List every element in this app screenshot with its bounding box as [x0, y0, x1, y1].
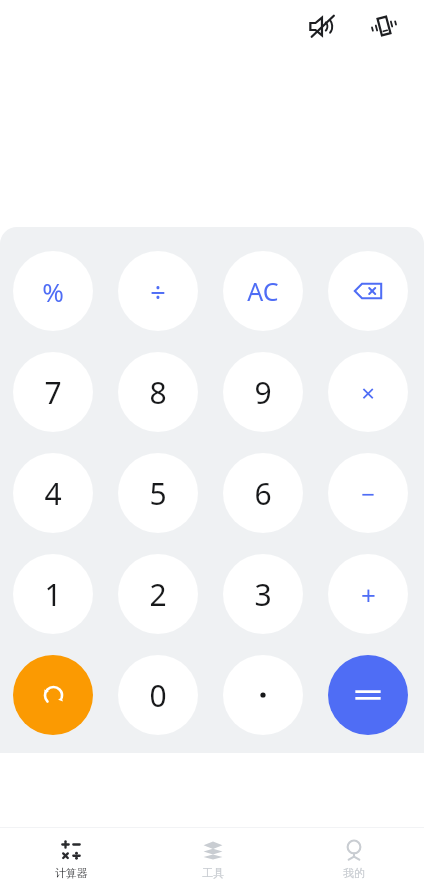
staticText: +	[361, 577, 376, 612]
button[interactable]: ÷	[118, 251, 198, 331]
button[interactable]: Convert	[13, 655, 93, 735]
button[interactable]: ×	[328, 352, 408, 432]
staticText: 我的	[343, 866, 365, 880]
button[interactable]: 0	[118, 655, 198, 735]
button[interactable]: Backspace	[328, 251, 408, 331]
button[interactable]: 工具	[142, 828, 283, 890]
button[interactable]: 2	[118, 554, 198, 634]
button[interactable]: Vibrate	[362, 4, 406, 48]
button[interactable]: 1	[13, 554, 93, 634]
staticText: −	[361, 477, 375, 510]
button[interactable]: 7	[13, 352, 93, 432]
button[interactable]: %	[13, 251, 93, 331]
staticText: 6	[254, 473, 272, 514]
button[interactable]: 6	[223, 453, 303, 533]
staticText: 4	[44, 473, 62, 514]
staticText: 7	[44, 372, 62, 413]
staticText: 5	[149, 473, 167, 514]
staticText: 2	[149, 574, 167, 615]
staticText: 工具	[202, 866, 224, 880]
staticText: 1	[44, 574, 62, 615]
staticText: 9	[254, 372, 272, 413]
staticText: ÷	[150, 273, 166, 310]
button[interactable]: Equals	[328, 655, 408, 735]
button[interactable]: AC	[223, 251, 303, 331]
button[interactable]: 5	[118, 453, 198, 533]
button[interactable]: 3	[223, 554, 303, 634]
staticText: 计算器	[55, 866, 88, 880]
button[interactable]: 我的	[283, 828, 424, 890]
button[interactable]: 计算器	[0, 828, 142, 890]
staticText: AC	[247, 274, 279, 308]
staticText: ×	[361, 376, 375, 409]
staticText: 8	[149, 372, 167, 413]
button[interactable]: 8	[118, 352, 198, 432]
staticText: 3	[254, 574, 272, 615]
staticText: 0	[149, 675, 167, 716]
button[interactable]: Sound off	[300, 4, 344, 48]
button[interactable]: −	[328, 453, 408, 533]
button[interactable]	[223, 655, 303, 735]
button[interactable]: +	[328, 554, 408, 634]
staticText: %	[42, 274, 64, 309]
button[interactable]: 4	[13, 453, 93, 533]
button[interactable]: 9	[223, 352, 303, 432]
